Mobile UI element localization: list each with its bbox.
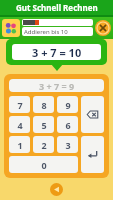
staticText: 1: [17, 139, 23, 151]
button[interactable]: Addieren bis 10: [22, 27, 93, 36]
button[interactable]: 6: [57, 116, 78, 133]
button[interactable]: 4: [9, 116, 30, 133]
staticText: 7: [17, 99, 23, 111]
button[interactable]: Backspace: [81, 96, 104, 133]
button[interactable]: Enter: [81, 136, 104, 173]
staticText: Gut Schnell Rechnen: [16, 2, 98, 13]
button[interactable]: 5: [33, 116, 54, 133]
button[interactable]: 8: [33, 96, 54, 113]
button[interactable]: Back: [50, 183, 63, 196]
staticText: 8: [41, 99, 47, 111]
staticText: 2: [41, 139, 47, 151]
staticText: 3 + 7 = 10: [32, 45, 82, 60]
button[interactable]: 1: [9, 136, 30, 153]
staticText: 3 + 7 = 9: [39, 80, 75, 92]
button[interactable]: 3: [57, 136, 78, 153]
button[interactable]: Profile: [2, 19, 20, 37]
staticText: 5: [41, 119, 47, 131]
staticText: 6: [65, 119, 71, 131]
button[interactable]: 7: [9, 96, 30, 113]
button[interactable]: 0: [9, 156, 78, 173]
staticText: 3: [65, 139, 71, 151]
staticText: 9: [65, 99, 71, 111]
staticText: 0: [41, 159, 47, 171]
button[interactable]: Close: [95, 20, 111, 36]
staticText: 4: [17, 119, 23, 131]
button[interactable]: 9: [57, 96, 78, 113]
button[interactable]: 2: [33, 136, 54, 153]
staticText: Addieren bis 10: [24, 28, 68, 36]
